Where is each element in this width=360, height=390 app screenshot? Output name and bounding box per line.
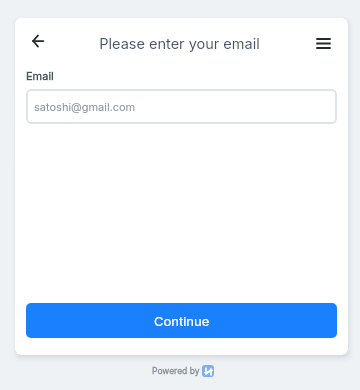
button[interactable]: satoshi@gmail.com xyxy=(26,89,337,124)
staticText: Powered by xyxy=(152,366,200,376)
staticText: satoshi@gmail.com xyxy=(34,100,136,113)
staticText: Email xyxy=(26,69,54,82)
staticText: Continue xyxy=(154,313,210,329)
button[interactable]: Back xyxy=(21,24,55,58)
staticText: Please enter your email xyxy=(99,35,260,53)
button[interactable]: Continue xyxy=(26,303,337,338)
button[interactable]: Menu xyxy=(306,26,340,60)
